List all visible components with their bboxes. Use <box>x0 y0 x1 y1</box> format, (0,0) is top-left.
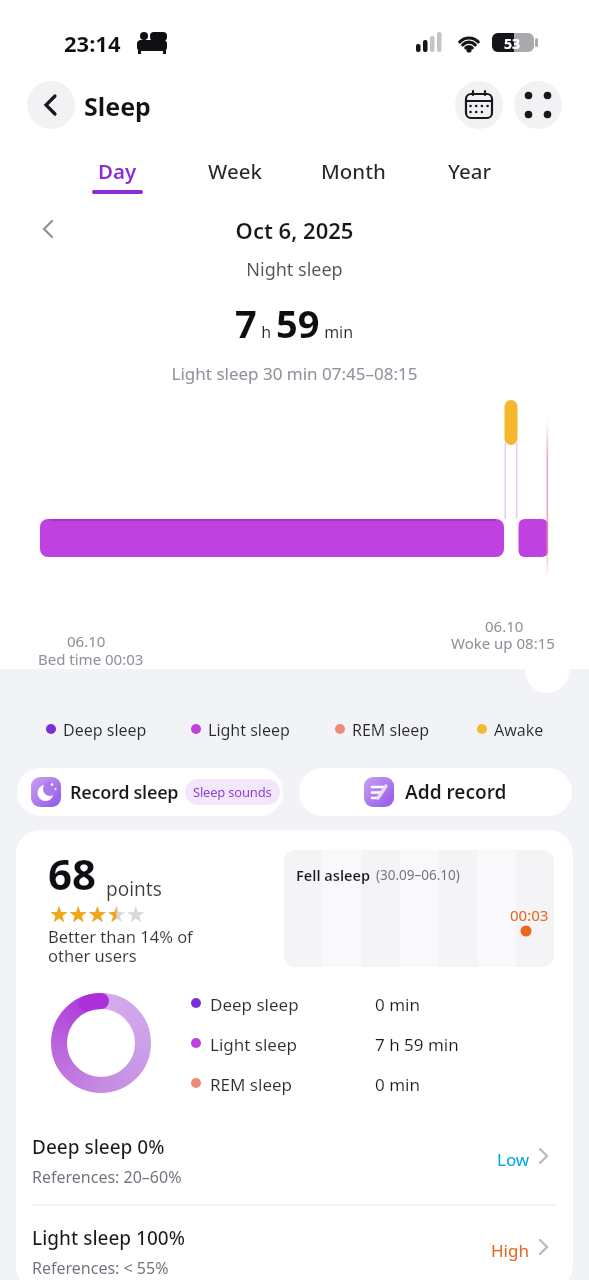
staticText: Deep sleep 0% <box>32 1134 165 1160</box>
staticText: 0 min <box>375 993 420 1016</box>
staticText: Add record <box>405 779 507 805</box>
staticText: 53 <box>504 34 521 53</box>
staticText: h <box>257 321 276 343</box>
button[interactable]: Add record <box>299 768 572 816</box>
staticText: REM sleep <box>352 719 430 741</box>
staticText: Light sleep 30 min 07:45–08:15 <box>0 362 589 385</box>
staticText: Record sleep <box>70 780 179 805</box>
staticText: 7 <box>235 297 257 349</box>
staticText: Low <box>497 1148 530 1171</box>
staticText: Deep sleep <box>63 719 147 741</box>
staticText: High <box>491 1239 529 1262</box>
staticText: Fell asleep <box>296 865 371 885</box>
button[interactable] <box>455 81 503 129</box>
staticText: (30.09–06.10) <box>376 866 460 884</box>
button[interactable]: Light sleep 100% <box>16 1215 573 1280</box>
staticText: Better than 14% of <box>48 925 193 947</box>
button[interactable]: Year <box>425 150 515 192</box>
staticText: 06.10 <box>485 616 524 636</box>
staticText: Light sleep <box>208 719 290 741</box>
staticText: points <box>106 876 162 902</box>
staticText: 06.10 <box>67 631 106 651</box>
staticText: Sleep sounds <box>193 783 272 801</box>
staticText: Deep sleep <box>210 993 299 1016</box>
button[interactable]: Day <box>72 150 162 192</box>
staticText: Oct 6, 2025 <box>0 215 589 245</box>
button[interactable]: Record sleep <box>17 768 283 816</box>
staticText: 0 min <box>375 1073 420 1096</box>
staticText: References: 20–60% <box>32 1166 182 1188</box>
staticText: Bed time 00:03 <box>38 649 144 669</box>
staticText: References: < 55% <box>32 1257 169 1279</box>
staticText: 7 h 59 min <box>375 1033 459 1056</box>
button[interactable]: Month <box>308 150 398 192</box>
button[interactable]: Week <box>190 150 280 192</box>
staticText: 00:03 <box>510 905 549 925</box>
staticText: 23:14 <box>64 28 121 58</box>
staticText: Light sleep <box>210 1033 297 1056</box>
staticText: Light sleep 100% <box>32 1225 185 1251</box>
staticText: Sleep <box>84 89 151 123</box>
staticText: Year <box>448 157 492 185</box>
staticText: Awake <box>494 719 544 741</box>
staticText: other users <box>48 944 137 966</box>
button[interactable] <box>514 81 562 129</box>
staticText: Month <box>321 157 386 185</box>
staticText: Week <box>208 157 262 185</box>
button[interactable] <box>27 81 75 129</box>
staticText: 59 <box>276 297 320 349</box>
staticText: min <box>320 321 354 343</box>
staticText: 68 <box>48 845 97 902</box>
staticText: Woke up 08:15 <box>451 633 555 653</box>
staticText: Day <box>98 157 137 185</box>
staticText: Night sleep <box>0 257 589 282</box>
button[interactable]: Deep sleep 0% <box>16 1126 573 1205</box>
staticText: REM sleep <box>210 1073 293 1096</box>
